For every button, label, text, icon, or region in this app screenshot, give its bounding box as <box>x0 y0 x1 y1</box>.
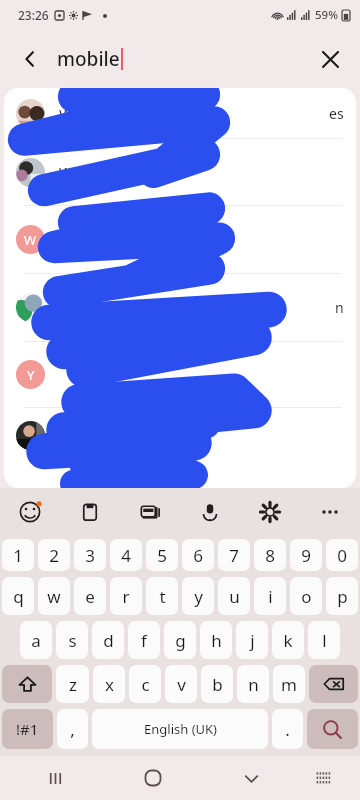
button[interactable]: d <box>92 621 124 659</box>
button[interactable]: Search <box>307 709 358 749</box>
staticText: w <box>47 585 61 608</box>
button[interactable]: 3 <box>74 539 106 571</box>
button[interactable]: 8 <box>254 539 286 571</box>
button[interactable]: w <box>38 577 70 615</box>
button[interactable]: a <box>20 621 52 659</box>
button[interactable]: u <box>218 577 250 615</box>
staticText: f <box>141 629 147 652</box>
staticText: 59% <box>315 7 338 23</box>
staticText: t <box>159 585 166 608</box>
staticText: k <box>283 629 293 652</box>
button[interactable]: h <box>200 621 232 659</box>
button[interactable]: Back <box>10 39 50 79</box>
button[interactable]: Wo <box>4 139 356 205</box>
button[interactable]: Hide keyboard <box>231 758 271 798</box>
staticText: 3 <box>85 544 95 567</box>
staticText: 2 <box>49 544 59 567</box>
button[interactable]: Backspace <box>309 665 358 703</box>
button[interactable]: Clipboard <box>60 488 120 536</box>
button[interactable]: k <box>272 621 304 659</box>
staticText: W <box>24 231 37 249</box>
button[interactable]: z <box>56 665 89 703</box>
button[interactable]: Recents <box>35 758 75 798</box>
button[interactable]: 4 <box>110 539 142 571</box>
button[interactable]: H <box>4 274 356 341</box>
button[interactable]: Y <box>4 342 356 407</box>
button[interactable]: c <box>129 665 161 703</box>
staticText: o <box>301 585 312 608</box>
button[interactable]: 1 <box>2 539 34 571</box>
button[interactable]: y <box>182 577 214 615</box>
button[interactable]: Clear search <box>310 39 350 79</box>
button[interactable]: W <box>4 206 356 273</box>
button[interactable]: x <box>93 665 125 703</box>
staticText: 4 <box>121 544 131 567</box>
button[interactable]: b <box>201 665 233 703</box>
button[interactable]: Zein <box>4 408 356 463</box>
staticText: 0 <box>337 544 347 567</box>
staticText: p <box>337 585 348 608</box>
button[interactable]: 9 <box>290 539 322 571</box>
button[interactable]: o <box>290 577 322 615</box>
staticText: c <box>141 673 150 696</box>
button[interactable]: More options <box>300 488 360 536</box>
button[interactable]: j <box>236 621 268 659</box>
button[interactable]: W <box>4 89 356 138</box>
button[interactable]: Settings <box>240 488 300 536</box>
button[interactable]: 5 <box>146 539 178 571</box>
button[interactable]: q <box>2 577 34 615</box>
staticText: W <box>59 104 73 124</box>
staticText: e <box>85 585 95 608</box>
button[interactable]: e <box>74 577 106 615</box>
button[interactable]: r <box>110 577 142 615</box>
staticText: i <box>268 585 273 608</box>
button[interactable]: Shift <box>2 665 52 703</box>
button[interactable]: Emoji <box>0 488 60 536</box>
button[interactable]: 0 <box>326 539 358 571</box>
button[interactable]: Keyboard layout <box>303 758 343 798</box>
staticText: g <box>175 629 186 652</box>
staticText: x <box>105 673 114 696</box>
staticText: 1 <box>13 544 23 567</box>
button[interactable]: g <box>164 621 196 659</box>
staticText: z <box>69 673 77 696</box>
button[interactable]: l <box>308 621 340 659</box>
button[interactable]: v <box>165 665 197 703</box>
staticText: es <box>329 104 344 123</box>
button[interactable]: Symbols <box>2 709 53 749</box>
button[interactable]: Home <box>133 758 173 798</box>
staticText: u <box>229 585 240 608</box>
staticText: 5 <box>157 544 167 567</box>
button[interactable]: i <box>254 577 286 615</box>
staticText: . <box>285 718 290 741</box>
button[interactable]: Keyboard modes <box>120 488 180 536</box>
button[interactable]: f <box>128 621 160 659</box>
button[interactable]: Voice input <box>180 488 240 536</box>
staticText: 7 <box>229 544 239 567</box>
staticText: v <box>177 673 186 696</box>
button[interactable]: 2 <box>38 539 70 571</box>
staticText: English (UK) <box>144 720 217 738</box>
staticText: 6 <box>193 544 203 567</box>
staticText: 8 <box>265 544 275 567</box>
staticText: l <box>322 629 327 652</box>
staticText: mobile <box>57 46 120 72</box>
staticText: m <box>281 673 297 696</box>
button[interactable]: . <box>272 709 303 749</box>
button[interactable]: 6 <box>182 539 214 571</box>
staticText: n <box>335 298 344 317</box>
button[interactable]: n <box>237 665 269 703</box>
button[interactable]: 7 <box>218 539 250 571</box>
button[interactable]: English (UK) <box>92 709 268 749</box>
button[interactable]: s <box>56 621 88 659</box>
staticText: r <box>122 585 130 608</box>
button[interactable]: p <box>326 577 358 615</box>
button[interactable]: t <box>146 577 178 615</box>
staticText: b <box>212 673 223 696</box>
button[interactable]: m <box>273 665 305 703</box>
staticText: 23:26 <box>18 7 49 23</box>
staticText: Wo <box>59 162 81 182</box>
button[interactable]: , <box>57 709 88 749</box>
